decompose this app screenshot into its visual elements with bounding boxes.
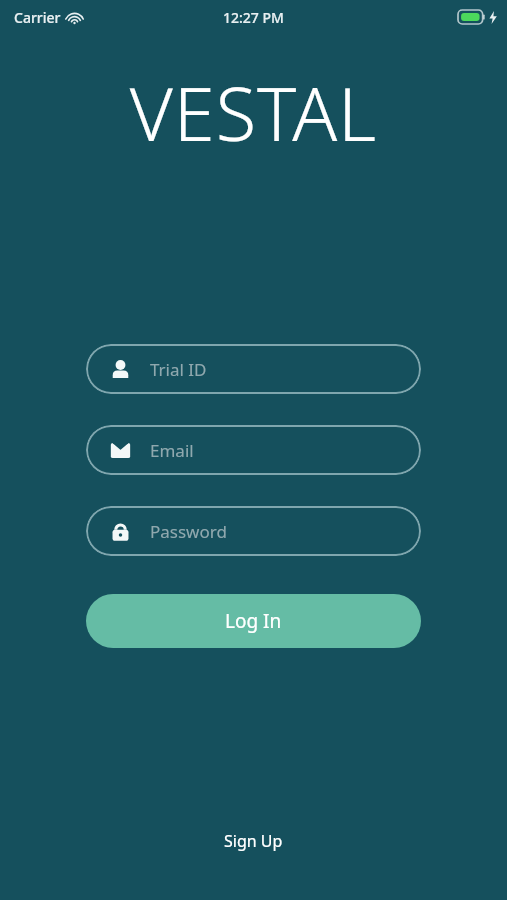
staticText: Email <box>150 439 194 462</box>
staticText: 12:27 PM <box>223 8 284 27</box>
staticText: Password <box>150 520 227 543</box>
staticText: Sign Up <box>224 830 283 852</box>
button[interactable]: Trial ID <box>86 344 421 394</box>
button[interactable]: Log In <box>86 594 421 648</box>
staticText: Carrier <box>14 8 61 27</box>
staticText: Trial ID <box>150 358 207 381</box>
staticText: VESTAL <box>0 62 507 163</box>
button[interactable]: Email <box>86 425 421 475</box>
button[interactable]: Sign Up <box>210 824 297 858</box>
button[interactable]: Password <box>86 506 421 556</box>
staticText: Log In <box>225 608 282 634</box>
